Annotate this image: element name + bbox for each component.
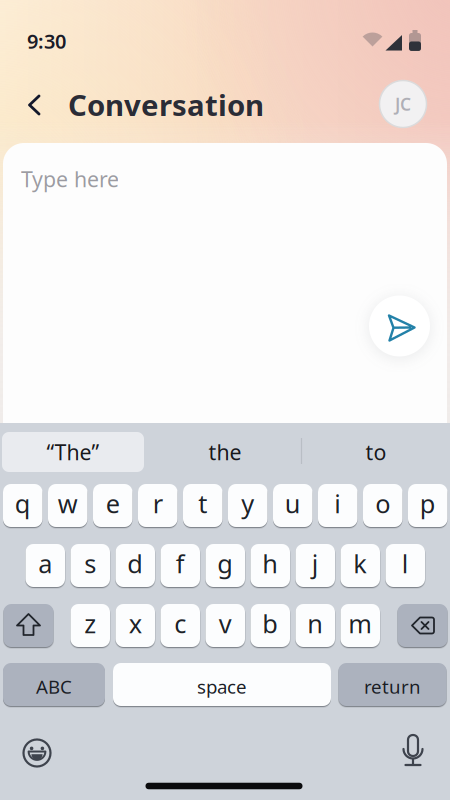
button[interactable]: a	[25, 544, 65, 587]
button[interactable]: “The”	[2, 432, 144, 472]
button[interactable]: m	[340, 604, 380, 647]
button[interactable]: y	[228, 484, 267, 527]
staticText: space	[197, 674, 247, 699]
staticText: i	[334, 487, 341, 520]
button[interactable]: to	[316, 432, 436, 472]
staticText: n	[307, 607, 323, 640]
button[interactable]: the	[160, 432, 290, 472]
button[interactable]: n	[295, 604, 335, 647]
button[interactable]: g	[205, 544, 245, 587]
staticText: w	[58, 487, 78, 520]
staticText: c	[174, 607, 186, 640]
staticText: b	[262, 607, 278, 640]
button[interactable]: Send	[369, 295, 430, 356]
button[interactable]: d	[115, 544, 155, 587]
staticText: m	[348, 607, 372, 640]
button[interactable]: v	[205, 604, 245, 647]
staticText: d	[127, 547, 143, 580]
button[interactable]: z	[70, 604, 110, 647]
staticText: the	[208, 438, 241, 466]
staticText: a	[38, 547, 52, 580]
button[interactable]: ABC	[3, 663, 105, 706]
staticText: 9:30	[27, 28, 66, 54]
staticText: Type here	[21, 165, 119, 193]
button[interactable]: Emoji	[15, 731, 59, 775]
button[interactable]: o	[363, 484, 402, 527]
staticText: s	[84, 547, 96, 580]
button[interactable]: f	[160, 544, 200, 587]
button[interactable]: w	[48, 484, 87, 527]
button[interactable]: i	[318, 484, 357, 527]
button[interactable]: c	[160, 604, 200, 647]
button[interactable]: t	[183, 484, 222, 527]
button[interactable]: j	[295, 544, 335, 587]
button[interactable]: e	[93, 484, 132, 527]
staticText: Conversation	[68, 85, 264, 124]
staticText: o	[375, 487, 390, 520]
staticText: f	[176, 547, 185, 580]
button[interactable]: Delete	[397, 604, 447, 647]
button[interactable]: q	[3, 484, 42, 527]
button[interactable]: s	[70, 544, 110, 587]
button[interactable]: Profile JC	[379, 80, 426, 127]
staticText: k	[353, 547, 367, 580]
staticText: p	[420, 487, 436, 520]
staticText: to	[365, 438, 386, 466]
staticText: return	[364, 674, 421, 699]
staticText: JC	[395, 92, 411, 115]
staticText: x	[129, 607, 142, 640]
staticText: y	[241, 487, 254, 520]
staticText: q	[15, 487, 31, 520]
button[interactable]: l	[385, 544, 425, 587]
button[interactable]: r	[138, 484, 177, 527]
button[interactable]: Shift	[3, 604, 53, 647]
button[interactable]: b	[250, 604, 290, 647]
staticText: ABC	[36, 674, 72, 699]
button[interactable]: h	[250, 544, 290, 587]
button[interactable]: Dictation	[391, 730, 435, 774]
button[interactable]: space	[113, 663, 331, 706]
staticText: u	[285, 487, 301, 520]
staticText: e	[106, 487, 120, 520]
staticText: h	[262, 547, 278, 580]
button[interactable]: return	[338, 663, 446, 706]
button[interactable]: p	[408, 484, 447, 527]
staticText: g	[217, 547, 233, 580]
button[interactable]: x	[115, 604, 155, 647]
staticText: r	[153, 487, 163, 520]
staticText: t	[198, 487, 207, 520]
staticText: “The”	[46, 438, 99, 466]
staticText: v	[219, 607, 232, 640]
button[interactable]: Back	[13, 83, 57, 127]
staticText: z	[84, 607, 96, 640]
staticText: l	[402, 547, 409, 580]
staticText: j	[312, 547, 319, 580]
button[interactable]: k	[340, 544, 380, 587]
button[interactable]: u	[273, 484, 312, 527]
